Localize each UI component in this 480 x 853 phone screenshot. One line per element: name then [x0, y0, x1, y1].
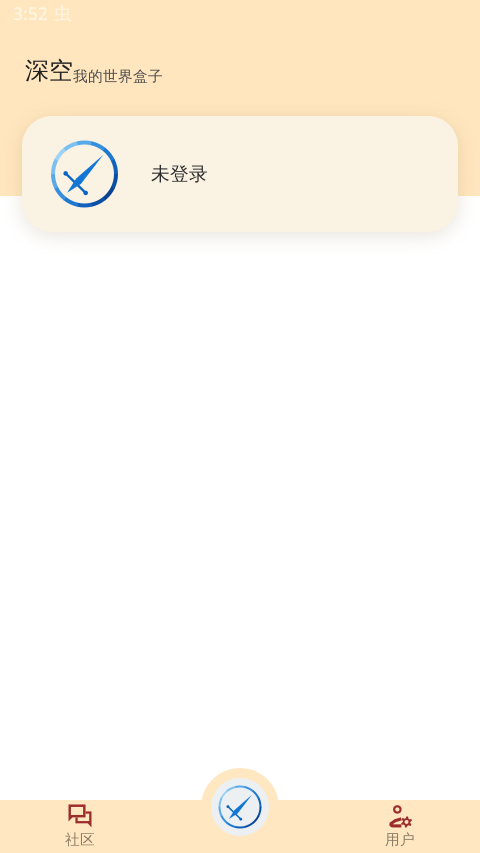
staticText: 3:52: [13, 2, 48, 25]
button[interactable]: 深空: [201, 768, 279, 846]
staticText: 深空: [25, 56, 73, 85]
button[interactable]: 用户: [364, 800, 436, 853]
staticText: 我的世界盒子: [73, 67, 163, 85]
staticText: 社区: [65, 830, 95, 848]
staticText: 虫: [54, 3, 71, 24]
button[interactable]: 社区: [44, 800, 116, 853]
staticText: 用户: [385, 830, 415, 848]
button[interactable]: 未登录: [22, 116, 458, 232]
staticText: 未登录: [151, 162, 208, 185]
